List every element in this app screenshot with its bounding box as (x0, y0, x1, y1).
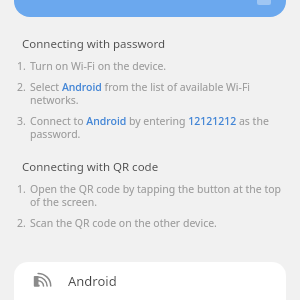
button[interactable]: Android (14, 262, 286, 300)
staticText: 2. (17, 216, 30, 230)
staticText: 1. (17, 59, 30, 73)
staticText: 3. (17, 114, 30, 128)
button[interactable]: QR code (14, 0, 286, 17)
staticText: Connecting with QR code (22, 159, 159, 175)
staticText: 1. (17, 182, 30, 196)
staticText: Connecting with password (22, 36, 166, 52)
staticText: Connect to Android by entering 12121212 … (30, 114, 290, 141)
staticText: Scan the QR code on the other device. (30, 216, 217, 230)
staticText: 2. (17, 80, 30, 94)
staticText: Select Android from the list of availabl… (30, 80, 290, 107)
staticText: Turn on Wi-Fi on the device. (30, 59, 167, 73)
button[interactable]: QR code (254, 0, 274, 10)
staticText: Open the QR code by tapping the button a… (30, 182, 290, 209)
staticText: Android (68, 272, 117, 290)
